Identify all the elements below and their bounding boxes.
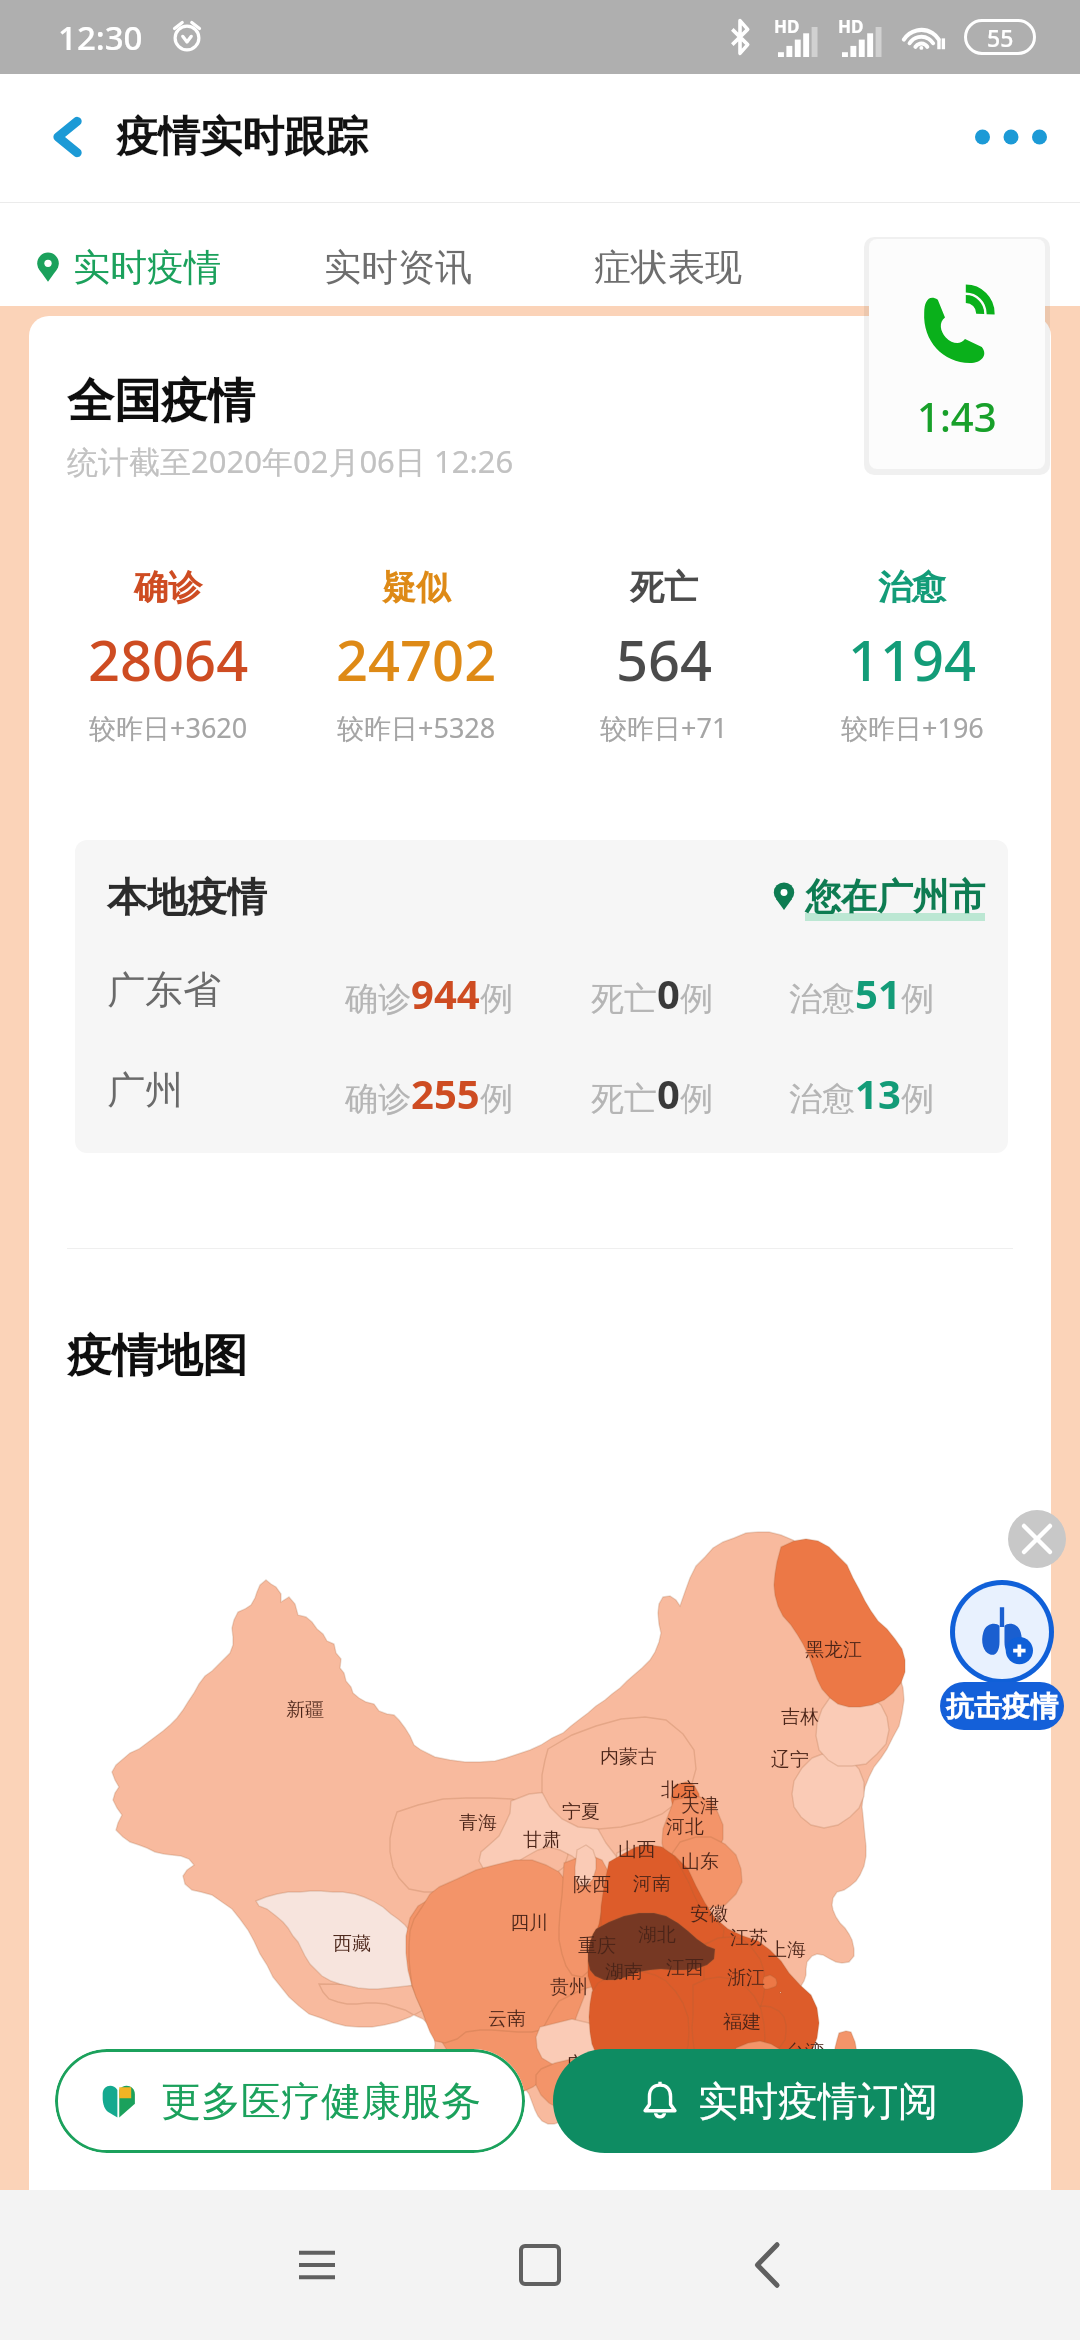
staticText: 例 <box>901 978 934 1020</box>
staticText: 较昨日+71 <box>600 709 728 746</box>
staticText: 例 <box>680 978 713 1020</box>
staticText: 云南 <box>488 2007 526 2031</box>
staticText: 安徽 <box>690 1902 728 1926</box>
button[interactable]: Home <box>493 2218 587 2312</box>
staticText: 青海 <box>459 1811 497 1835</box>
button[interactable]: Ongoing call <box>869 239 1045 469</box>
staticText: 治愈 <box>789 1078 855 1120</box>
staticText: 全国疫情 <box>67 372 255 431</box>
staticText: 山东 <box>681 1850 719 1874</box>
staticText: 北京 <box>661 1778 699 1802</box>
staticText: 新疆 <box>286 1698 324 1722</box>
staticText: 实时疫情 <box>73 244 221 291</box>
staticText: 吉林 <box>781 1705 819 1729</box>
staticText: 贵州 <box>550 1975 588 1999</box>
staticText: 宁夏 <box>562 1800 600 1824</box>
staticText: 治愈 <box>789 978 855 1020</box>
staticText: 广东省 <box>107 966 221 1014</box>
staticText: 浙江 <box>727 1966 765 1990</box>
staticText: 确诊 <box>345 1078 411 1120</box>
staticText: 例 <box>480 1078 513 1120</box>
staticText: 本地疫情 <box>107 872 267 922</box>
staticText: 确诊 <box>134 566 202 609</box>
staticText: 江苏 <box>730 1926 768 1950</box>
staticText: 0 <box>657 966 680 1020</box>
staticText: 重庆 <box>578 1934 616 1958</box>
staticText: 1:43 <box>917 389 997 443</box>
staticText: 0 <box>657 1066 680 1120</box>
staticText: 福建 <box>723 2010 761 2034</box>
button[interactable]: 症状表现 <box>594 244 742 291</box>
staticText: 实时疫情订阅 <box>698 2076 938 2126</box>
staticText: 例 <box>901 1078 934 1120</box>
staticText: HD <box>838 15 864 38</box>
staticText: 28064 <box>88 621 249 697</box>
staticText: 24702 <box>336 621 497 697</box>
staticText: 河北 <box>666 1815 704 1839</box>
button[interactable]: 实时疫情 <box>30 244 221 291</box>
staticText: 陕西 <box>573 1873 611 1897</box>
staticText: 广州 <box>107 1066 183 1114</box>
button[interactable]: 抗击疫情 <box>940 1580 1064 1730</box>
staticText: 台湾 <box>786 2040 824 2064</box>
staticText: 疫情实时跟踪 <box>116 111 368 164</box>
button[interactable]: Back <box>720 2218 814 2312</box>
staticText: 河南 <box>633 1872 671 1896</box>
staticText: 统计截至2020年02月06日 12:26 <box>67 440 514 482</box>
button[interactable]: Recents <box>270 2218 364 2312</box>
staticText: 上海 <box>768 1938 806 1962</box>
staticText: 死亡 <box>630 566 698 609</box>
staticText: 天津 <box>681 1794 719 1818</box>
staticText: 甘肃 <box>523 1828 561 1852</box>
staticText: 四川 <box>510 1911 548 1935</box>
staticText: 黑龙江 <box>805 1638 862 1662</box>
staticText: 湖南 <box>605 1960 643 1984</box>
staticText: 死亡 <box>591 1078 657 1120</box>
staticText: 抗击疫情 <box>946 1689 1058 1724</box>
button[interactable]: 实时资讯 <box>324 244 472 291</box>
staticText: 疑似 <box>382 566 450 609</box>
staticText: 辽宁 <box>771 1748 809 1772</box>
button[interactable]: Close <box>1008 1510 1066 1568</box>
staticText: 确诊 <box>345 978 411 1020</box>
button[interactable]: 更多医疗健康服务 <box>55 2049 525 2153</box>
staticText: 死亡 <box>591 978 657 1020</box>
staticText: 内蒙古 <box>600 1745 657 1769</box>
staticText: 564 <box>616 621 713 697</box>
staticText: 疫情地图 <box>67 1328 247 1385</box>
staticText: 更多医疗健康服务 <box>161 2076 481 2126</box>
staticText: 944 <box>411 966 480 1020</box>
staticText: 51 <box>855 966 901 1020</box>
staticText: 广西 <box>566 2052 604 2076</box>
staticText: 治愈 <box>878 566 946 609</box>
staticText: 山西 <box>618 1838 656 1862</box>
button[interactable]: 实时疫情订阅 <box>553 2049 1023 2153</box>
staticText: 1194 <box>848 621 977 697</box>
staticText: 您在广州市 <box>805 874 985 919</box>
staticText: 较昨日+5328 <box>337 709 496 746</box>
staticText: 较昨日+196 <box>841 709 984 746</box>
staticText: 255 <box>411 1066 480 1120</box>
staticText: 西藏 <box>333 1932 371 1956</box>
button[interactable]: 您在广州市 <box>767 874 985 919</box>
button[interactable]: More options <box>968 94 1054 180</box>
staticText: 江西 <box>666 1956 704 1980</box>
staticText: 较昨日+3620 <box>89 709 248 746</box>
staticText: HD <box>774 15 800 38</box>
staticText: 13 <box>855 1066 901 1120</box>
staticText: 例 <box>680 1078 713 1120</box>
staticText: 例 <box>480 978 513 1020</box>
button[interactable]: Back <box>28 97 108 177</box>
staticText: 12:30 <box>58 15 143 60</box>
staticText: 55 <box>987 22 1014 53</box>
staticText: 湖北 <box>638 1923 676 1947</box>
